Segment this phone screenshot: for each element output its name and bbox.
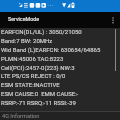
button[interactable]: More options <box>107 15 118 26</box>
staticText: 4G Information <box>2 113 40 120</box>
staticText: PLMN:45006 TAC:8223 <box>1 55 64 62</box>
staticText: Wid Band (L)EARFCN: 630654/64865 <box>1 46 101 53</box>
staticText: ServiceMode <box>8 16 40 22</box>
staticText: Band:7 BW: 20MHz <box>1 37 53 44</box>
staticText: EARFCN(DL/UL) : 3050/21050 <box>1 28 82 35</box>
staticText: RSRP:-71 RSRQ:-11 RSSI:-39 <box>1 99 76 106</box>
staticText: ESM STATE:INACTIVE <box>1 81 60 88</box>
staticText: Cell(PCI):2457-0(223) NW:3 <box>1 64 75 71</box>
staticText: ESM CAUSE:0 EMM CAUSE:- <box>1 90 79 97</box>
staticText: LTE PS/CS REJECT : 0/0 <box>1 72 66 79</box>
button[interactable]: 4G Information <box>0 111 120 120</box>
